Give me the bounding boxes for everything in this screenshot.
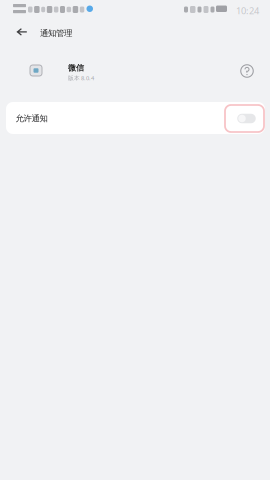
staticText: 允许通知 <box>15 113 47 124</box>
staticText: 版本 8.0.4 <box>68 74 94 82</box>
staticText: 10:24 <box>236 4 259 17</box>
button[interactable]: 允许通知 <box>6 102 265 134</box>
button[interactable]: Help <box>238 62 256 80</box>
staticText: 通知管理 <box>40 28 72 39</box>
button[interactable]: Back <box>10 22 34 42</box>
button[interactable]: Allow notifications <box>225 105 264 132</box>
staticText: 微信 <box>68 63 84 73</box>
